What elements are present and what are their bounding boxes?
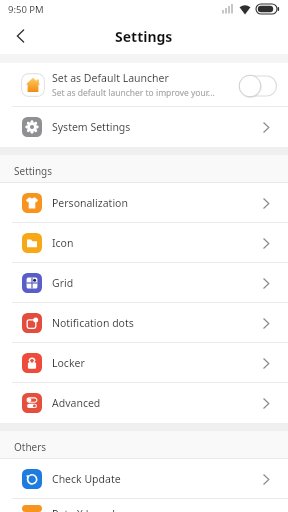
button[interactable]: Notification dots xyxy=(0,303,288,343)
staticText: Check Update xyxy=(52,472,121,486)
button[interactable]: Rate X launcher xyxy=(0,499,288,512)
button[interactable]: Set as Default Launcher xyxy=(0,63,288,106)
staticText: Icon xyxy=(52,236,74,250)
staticText: Settings xyxy=(115,27,173,46)
button[interactable]: Icon xyxy=(0,223,288,263)
staticText: Set as default launcher to improve your.… xyxy=(52,87,215,99)
staticText: Notification dots xyxy=(52,316,134,330)
button[interactable]: Check Update xyxy=(0,459,288,499)
button[interactable]: Locker xyxy=(0,343,288,383)
staticText: Others xyxy=(14,440,47,454)
staticText: Rate X launcher xyxy=(52,507,130,512)
button[interactable]: Personalization xyxy=(0,183,288,223)
button[interactable] xyxy=(238,71,278,99)
button[interactable]: System Settings xyxy=(0,107,288,147)
button[interactable] xyxy=(16,29,25,43)
staticText: Set as Default Launcher xyxy=(52,71,169,85)
button[interactable]: Grid xyxy=(0,263,288,303)
staticText: Settings xyxy=(14,164,53,178)
staticText: Locker xyxy=(52,356,85,370)
staticText: System Settings xyxy=(52,120,131,134)
staticText: Advanced xyxy=(52,396,101,410)
button[interactable]: Advanced xyxy=(0,383,288,423)
staticText: 9:50 PM xyxy=(8,3,44,16)
staticText: Personalization xyxy=(52,196,128,210)
staticText: Grid xyxy=(52,276,74,290)
